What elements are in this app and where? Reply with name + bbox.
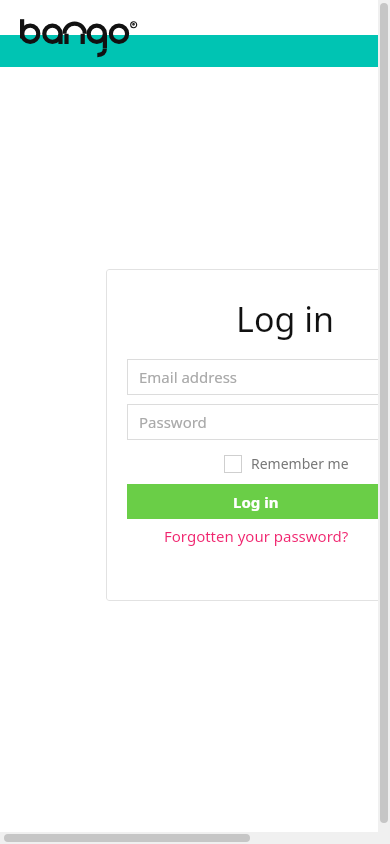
button[interactable]: Forgotten your password? (127, 526, 385, 546)
staticText: Email address (139, 367, 238, 387)
staticText: Remember me (251, 454, 349, 473)
staticText: Log in (106, 296, 334, 342)
staticText: Log in (233, 492, 279, 512)
other: bango (20, 16, 138, 56)
staticText: Password (139, 412, 207, 432)
button[interactable]: Remember me (224, 454, 349, 473)
button[interactable]: Email address (127, 359, 385, 395)
staticText: Forgotten your password? (164, 526, 349, 546)
button[interactable]: Log in (127, 484, 385, 519)
button[interactable]: Password (127, 404, 385, 440)
